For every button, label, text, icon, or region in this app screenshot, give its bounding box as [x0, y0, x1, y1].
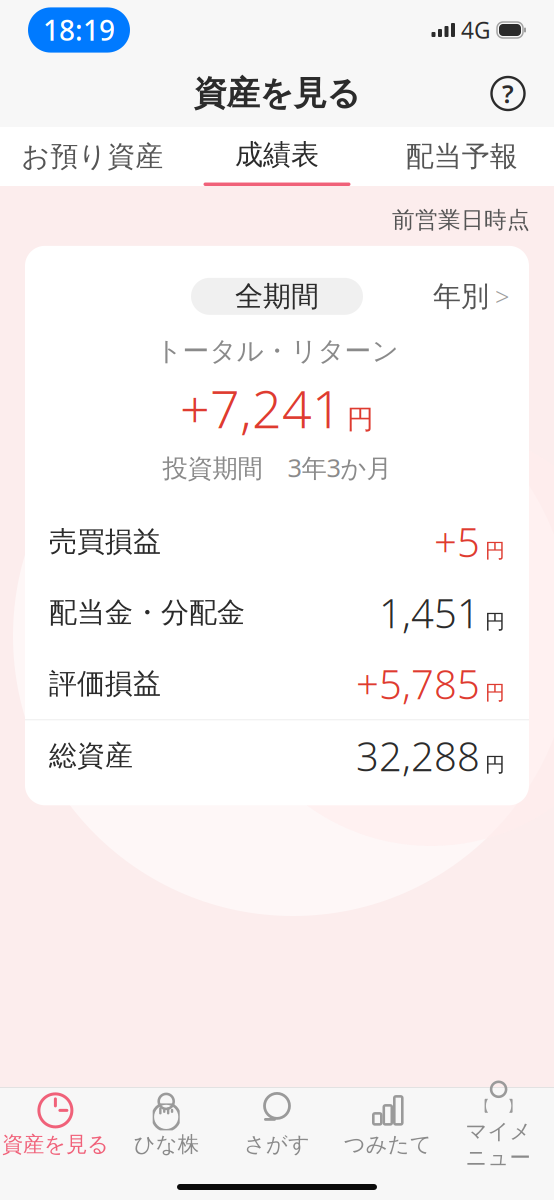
button[interactable]: 資産を見る [0, 1088, 111, 1162]
staticText: お預り資産 [21, 139, 163, 174]
staticText: トータル・リターン [155, 335, 398, 368]
staticText: 配当金・分配金 [49, 596, 245, 630]
staticText: 4G [461, 15, 491, 45]
staticText: 円 [485, 609, 505, 634]
button[interactable]: 年別 [433, 273, 509, 319]
staticText: +5,785 [356, 657, 480, 710]
staticText: 年別 [433, 279, 489, 313]
staticText: +5 [434, 515, 480, 568]
button[interactable]: ひな株 [111, 1088, 222, 1162]
button[interactable]: 配当予報 [369, 127, 554, 186]
staticText: 成績表 [235, 138, 319, 172]
staticText: 配当予報 [406, 139, 518, 174]
button[interactable]: つみたて [332, 1088, 443, 1162]
staticText: 円 [485, 538, 505, 563]
staticText: つみたて [344, 1131, 432, 1158]
button[interactable]: ヘルプ [488, 73, 528, 113]
staticText: 売買損益 [49, 525, 161, 559]
staticText: 資産を見る [193, 73, 360, 114]
staticText: +7,241 [180, 374, 342, 443]
staticText: 投資期間 3年3か月 [162, 451, 391, 484]
staticText: 1,451 [379, 586, 480, 639]
staticText: 円 [347, 403, 374, 436]
button[interactable]: マイメニュー [443, 1088, 554, 1162]
staticText: ? [502, 77, 514, 110]
button[interactable]: お預り資産 [0, 127, 185, 186]
staticText: 評価損益 [49, 667, 161, 701]
staticText: さがす [244, 1131, 310, 1158]
staticText: 円 [485, 752, 505, 777]
staticText: 18:19 [43, 11, 115, 49]
staticText: 前営業日時点 [392, 206, 530, 234]
staticText: 総資産 [49, 739, 133, 773]
staticText: 32,288 [356, 729, 480, 782]
staticText: > [495, 279, 509, 313]
button[interactable]: 全期間 [191, 278, 363, 315]
staticText: 資産を見る [2, 1131, 109, 1158]
button[interactable]: さがす [222, 1088, 332, 1162]
staticText: マイメニュー [466, 1118, 532, 1171]
button[interactable]: 成績表 [185, 127, 369, 186]
staticText: 円 [485, 680, 505, 705]
staticText: ひな株 [134, 1131, 199, 1158]
staticText: 全期間 [235, 279, 319, 313]
